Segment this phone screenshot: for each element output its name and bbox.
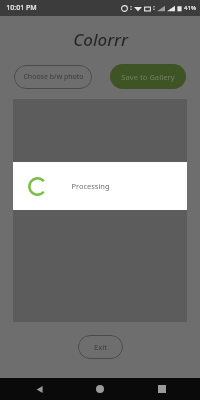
staticText: 41%: [184, 4, 196, 12]
staticText: Colorrr: [73, 28, 128, 51]
staticText: 10:01 PM: [6, 3, 37, 13]
staticText: Processing: [71, 181, 110, 191]
button[interactable]: Recent apps: [139, 378, 185, 400]
staticText: Exit: [94, 342, 107, 352]
button[interactable]: [13, 99, 187, 322]
staticText: Choose b/w photo: [23, 72, 84, 82]
button[interactable]: Back: [16, 378, 62, 400]
button[interactable]: Exit: [78, 335, 123, 359]
button[interactable]: Save to Gallery: [110, 64, 186, 89]
staticText: Save to Gallery: [121, 72, 175, 82]
button[interactable]: Choose b/w photo: [14, 65, 92, 89]
button[interactable]: Home: [77, 378, 123, 400]
